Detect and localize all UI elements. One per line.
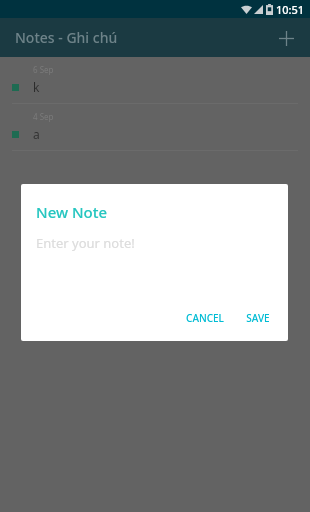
staticText: Notes - Ghi chú: [15, 28, 118, 47]
staticText: New Note: [36, 202, 108, 222]
staticText: 6 Sep: [33, 64, 54, 75]
button[interactable]: 4 Sep: [0, 104, 310, 150]
button[interactable]: Enter your note!: [36, 234, 273, 252]
button[interactable]: CANCEL: [178, 305, 232, 331]
staticText: 4 Sep: [33, 111, 54, 122]
button[interactable]: Add note: [270, 22, 302, 54]
staticText: CANCEL: [186, 311, 224, 325]
staticText: a: [33, 126, 40, 142]
staticText: 10:51: [276, 2, 305, 17]
button[interactable]: 6 Sep: [0, 57, 310, 103]
staticText: Enter your note!: [36, 234, 135, 252]
button[interactable]: SAVE: [238, 305, 278, 331]
staticText: k: [33, 79, 40, 95]
staticText: SAVE: [246, 311, 270, 325]
